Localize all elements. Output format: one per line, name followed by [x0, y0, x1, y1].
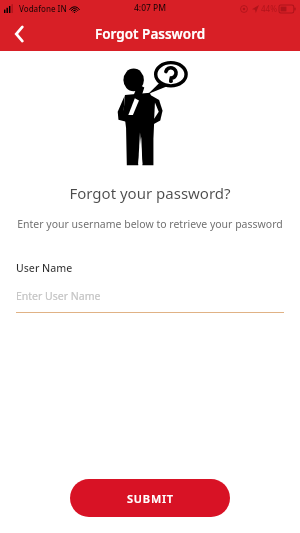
button[interactable]: Back — [0, 16, 38, 51]
button[interactable]: Enter User Name — [16, 289, 284, 313]
staticText: User Name — [16, 261, 73, 275]
staticText: Forgot Password — [95, 25, 206, 43]
staticText: Enter your username below to retrieve yo… — [8, 217, 292, 231]
button[interactable]: SUBMIT — [70, 479, 230, 517]
staticText: Enter User Name — [16, 289, 101, 303]
staticText: SUBMIT — [127, 491, 174, 506]
staticText: 4:07 PM — [134, 2, 167, 14]
staticText: 44% — [261, 3, 277, 14]
staticText: Forgot your password? — [0, 183, 300, 203]
staticText: Vodafone IN — [19, 3, 67, 14]
